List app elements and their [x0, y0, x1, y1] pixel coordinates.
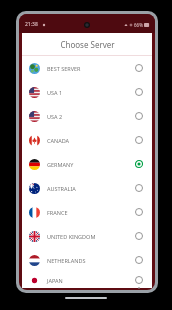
staticText: 21:38	[25, 21, 38, 28]
staticText: USA 2	[47, 113, 135, 120]
other: Select BEST SERVER	[135, 64, 143, 72]
other: Select USA 1	[135, 88, 143, 96]
button[interactable]: GERMANY	[22, 152, 152, 176]
staticText: CANADA	[47, 137, 135, 144]
staticText: JAPAN	[47, 277, 135, 284]
other: Select JAPAN	[135, 276, 143, 284]
staticText: NETHERLANDS	[47, 257, 135, 264]
other: Select FRANCE	[135, 208, 143, 216]
other: Select NETHERLANDS	[135, 256, 143, 264]
other: Select AUSTRALIA	[135, 184, 143, 192]
button[interactable]: BEST SERVER	[22, 56, 152, 80]
button[interactable]: UNITED KINGDOM	[22, 224, 152, 248]
other: Select CANADA	[135, 136, 143, 144]
button[interactable]: NETHERLANDS	[22, 248, 152, 272]
button[interactable]: USA 2	[22, 104, 152, 128]
button[interactable]: CANADA	[22, 128, 152, 152]
other: Select USA 2	[135, 112, 143, 120]
button[interactable]: FRANCE	[22, 200, 152, 224]
staticText: GERMANY	[47, 161, 135, 168]
staticText: AUSTRALIA	[47, 185, 135, 192]
staticText: 66%	[134, 22, 143, 28]
staticText: USA 1	[47, 89, 135, 96]
other: Selected GERMANY	[135, 160, 143, 168]
other: Select UNITED KINGDOM	[135, 232, 143, 240]
button[interactable]: AUSTRALIA	[22, 176, 152, 200]
button[interactable]: USA 1	[22, 80, 152, 104]
button[interactable]: Choose Server	[22, 33, 152, 55]
staticText: Choose Server	[60, 39, 115, 50]
staticText: UNITED KINGDOM	[47, 233, 135, 240]
staticText: BEST SERVER	[47, 65, 135, 72]
button[interactable]: JAPAN	[22, 272, 152, 288]
staticText: FRANCE	[47, 209, 135, 216]
